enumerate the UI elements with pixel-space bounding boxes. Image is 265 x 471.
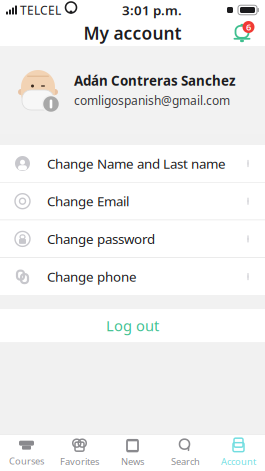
button[interactable]: Account <box>212 435 265 471</box>
button[interactable]: Favorites <box>53 435 106 471</box>
staticText: Courses <box>9 455 44 467</box>
staticText: comligospanish@gmail.com <box>74 92 230 108</box>
staticText: News <box>121 455 144 468</box>
button[interactable]: Change Name and Last name <box>0 145 265 182</box>
staticText: Change Email <box>47 192 129 210</box>
staticText: 3:01 p.m. <box>122 1 182 19</box>
button[interactable]: Change Email <box>0 183 265 220</box>
button[interactable]: News <box>106 435 159 471</box>
staticText: Adán Contreras Sanchez <box>74 72 236 89</box>
button[interactable]: Notifications, 6 unread <box>227 19 257 47</box>
staticText: 6 <box>246 21 251 33</box>
button[interactable]: Change password <box>0 220 265 257</box>
button[interactable]: Search <box>159 435 212 471</box>
staticText: Change phone <box>47 268 137 285</box>
button[interactable]: Log out <box>0 309 265 342</box>
staticText: Account <box>221 455 256 468</box>
button[interactable]: Courses <box>0 435 53 471</box>
staticText: Change password <box>47 230 155 248</box>
staticText: Favorites <box>60 455 99 468</box>
staticText: My account <box>83 21 181 44</box>
button[interactable]: Adán Contreras Sanchez <box>0 46 265 134</box>
staticText: Log out <box>106 316 159 335</box>
staticText: TELCEL <box>20 2 61 18</box>
staticText: Search <box>171 455 200 468</box>
button[interactable]: Change phone <box>0 258 265 295</box>
staticText: Change Name and Last name <box>47 155 226 172</box>
